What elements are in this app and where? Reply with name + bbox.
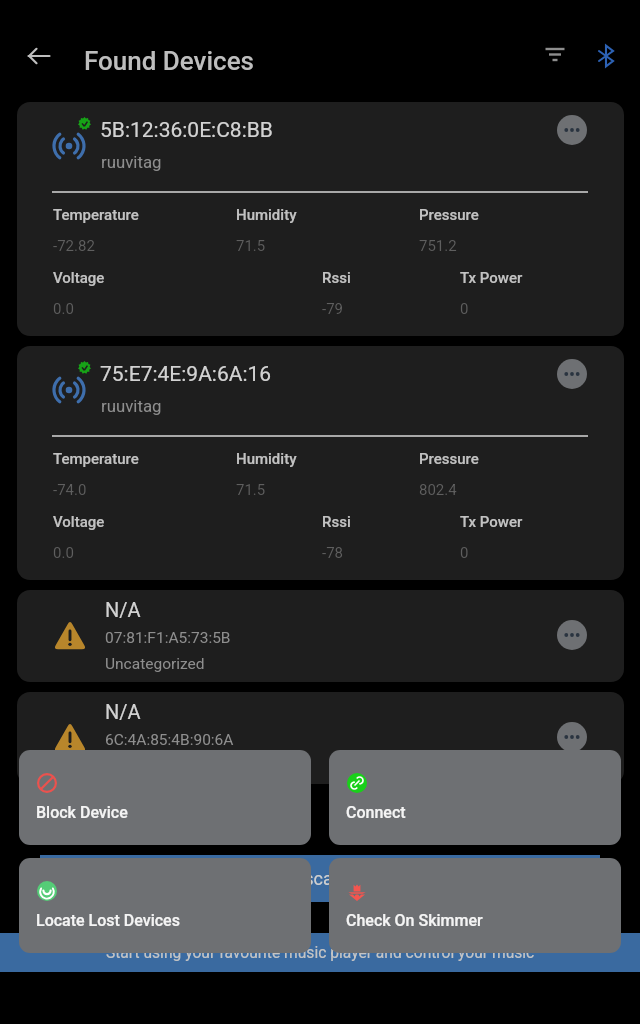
staticText: Found Devices [84, 46, 254, 76]
staticText: N/A [105, 598, 141, 621]
staticText: -72.82 [53, 237, 95, 255]
button[interactable]: More options [557, 115, 587, 145]
button[interactable]: 5B:12:36:0E:C8:BB [17, 102, 624, 336]
staticText: N/A [105, 700, 141, 723]
staticText: 0 [460, 300, 469, 318]
button[interactable]: N/A [17, 590, 624, 682]
staticText: Stop scanning [263, 868, 378, 889]
staticText: Voltage [53, 269, 105, 287]
staticText: Block Device [36, 803, 128, 822]
staticText: 07:81:F1:A5:73:5B [105, 629, 231, 647]
button[interactable]: More options [557, 722, 587, 752]
staticText: 71.5 [236, 237, 266, 255]
button[interactable]: N/A [17, 692, 624, 784]
staticText: Temperature [53, 206, 139, 224]
staticText: Pressure [419, 450, 479, 468]
staticText: Pressure [419, 206, 479, 224]
staticText: 0.0 [53, 544, 74, 562]
button[interactable]: Filter [532, 33, 578, 79]
staticText: Tx Power [460, 513, 523, 531]
staticText: Rssi [322, 513, 351, 531]
staticText: Humidity [236, 206, 297, 224]
button[interactable]: 75:E7:4E:9A:6A:16 [17, 346, 624, 580]
staticText: ruuvitag [101, 396, 162, 416]
staticText: Check On Skimmer [346, 911, 483, 930]
staticText: 71.5 [236, 481, 266, 499]
staticText: Uncategorized [105, 655, 205, 673]
staticText: Rssi [322, 269, 351, 287]
button[interactable]: Bluetooth [583, 33, 629, 79]
staticText: Locate Lost Devices [36, 911, 180, 930]
staticText: Tx Power [460, 269, 523, 287]
staticText: ruuvitag [101, 152, 162, 172]
staticText: Connect [346, 803, 406, 822]
button[interactable]: Back [16, 33, 62, 79]
staticText: Humidity [236, 450, 297, 468]
button[interactable]: Connect [329, 750, 621, 845]
staticText: 5B:12:36:0E:C8:BB [100, 118, 273, 143]
staticText: Start using your favourite music player … [106, 944, 535, 962]
staticText: 0 [460, 544, 469, 562]
button[interactable]: Check On Skimmer [329, 858, 621, 953]
staticText: Temperature [53, 450, 139, 468]
staticText: -78 [322, 544, 344, 562]
button[interactable]: More options [557, 620, 587, 650]
staticText: 802.4 [419, 481, 457, 499]
button[interactable]: Locate Lost Devices [19, 858, 311, 953]
staticText: -79 [322, 300, 344, 318]
staticText: -74.0 [53, 481, 87, 499]
staticText: Voltage [53, 513, 105, 531]
staticText: 75:E7:4E:9A:6A:16 [100, 362, 272, 387]
staticText: 751.2 [419, 237, 457, 255]
button[interactable]: More options [557, 359, 587, 389]
button[interactable]: Block Device [19, 750, 311, 845]
staticText: 0.0 [53, 300, 74, 318]
staticText: 6C:4A:85:4B:90:6A [105, 731, 234, 749]
